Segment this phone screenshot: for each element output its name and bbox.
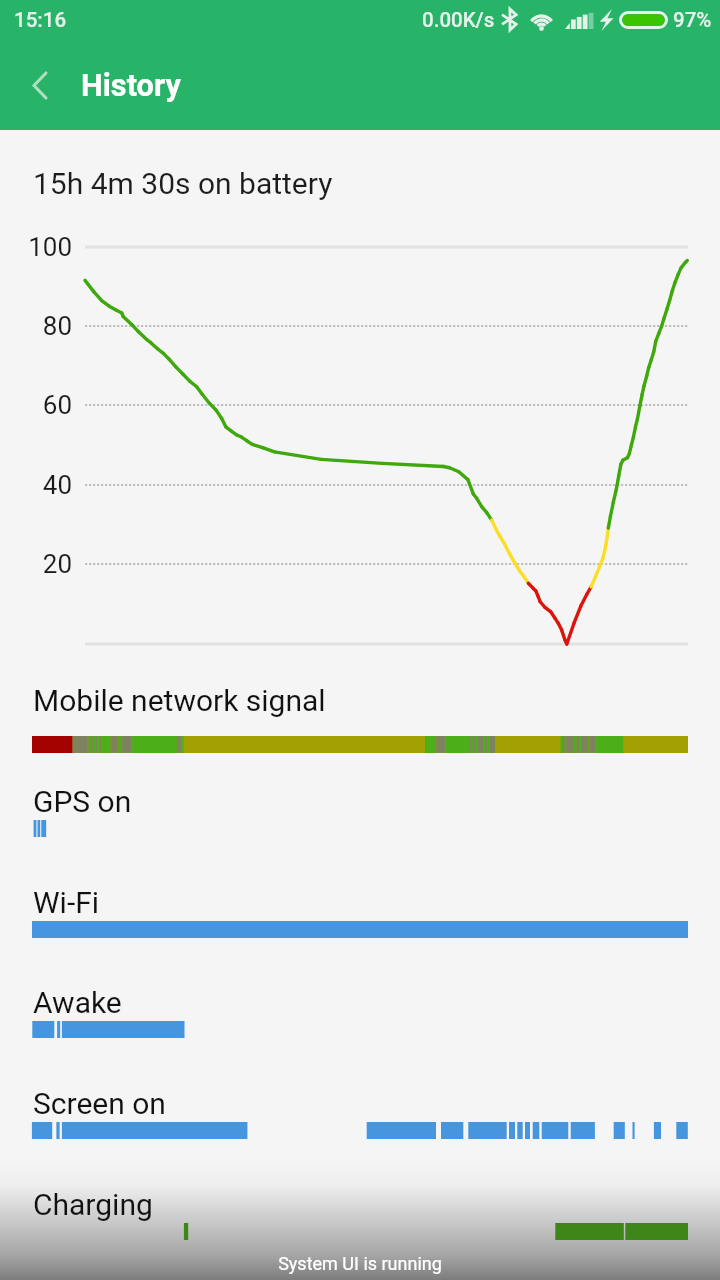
staticText: GPS on xyxy=(33,784,132,819)
staticText: System UI is running xyxy=(0,1253,720,1274)
staticText: 15h 4m 30s on battery xyxy=(33,166,333,201)
staticText: 0.00K/s xyxy=(422,8,495,32)
staticText: Mobile network signal xyxy=(33,683,326,718)
staticText: 60 xyxy=(0,390,72,420)
staticText: Screen on xyxy=(33,1086,166,1121)
staticText: Awake xyxy=(33,985,122,1020)
staticText: Charging xyxy=(33,1187,153,1222)
staticText: 40 xyxy=(0,470,72,500)
staticText: 97% xyxy=(673,8,712,32)
staticText: 15:16 xyxy=(14,8,67,32)
staticText: 20 xyxy=(0,549,72,579)
staticText: 80 xyxy=(0,311,72,341)
button[interactable]: Back xyxy=(12,57,68,113)
staticText: 100 xyxy=(0,232,72,262)
staticText: History xyxy=(81,68,181,104)
staticText: Wi-Fi xyxy=(33,885,100,920)
